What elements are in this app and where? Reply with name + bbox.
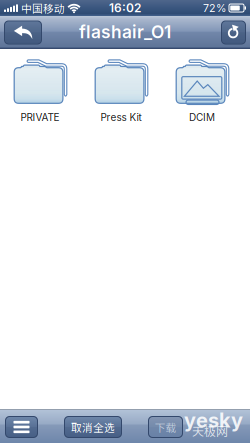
- button[interactable]: PRIVATE: [0, 57, 80, 125]
- button[interactable]: Back: [4, 20, 42, 44]
- button[interactable]: 下载: [148, 416, 183, 438]
- staticText: PRIVATE: [20, 111, 59, 123]
- button[interactable]: 取消全选: [64, 416, 122, 438]
- staticText: 下载: [154, 419, 176, 435]
- button[interactable]: DCIM: [162, 57, 242, 125]
- staticText: flashair_O1: [79, 21, 171, 42]
- staticText: Press Kit: [100, 111, 141, 123]
- staticText: 天极网: [192, 422, 228, 439]
- staticText: 72%: [203, 1, 226, 14]
- button[interactable]: Press Kit: [81, 57, 161, 125]
- staticText: yesky: [184, 408, 243, 432]
- button[interactable]: Refresh: [221, 20, 246, 44]
- staticText: 取消全选: [71, 419, 115, 435]
- staticText: DCIM: [189, 111, 215, 123]
- staticText: 16:02: [109, 1, 141, 15]
- staticText: 中国移动: [21, 0, 65, 16]
- button[interactable]: Menu: [5, 416, 38, 438]
